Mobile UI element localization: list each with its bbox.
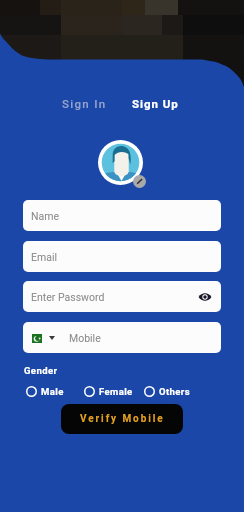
button[interactable]: Verify Mobile [61, 404, 183, 434]
button[interactable]: Email [23, 241, 221, 272]
button[interactable]: Others [144, 386, 190, 397]
button[interactable]: Edit profile photo [133, 175, 146, 188]
button[interactable]: Enter Password [23, 281, 221, 312]
button[interactable]: Male [26, 386, 64, 397]
staticText: Mobile [69, 332, 101, 344]
staticText: Sign In [62, 97, 107, 110]
button[interactable]: Female [84, 386, 133, 397]
button[interactable]: Show password [198, 290, 212, 304]
button[interactable]: Sign In [56, 92, 113, 115]
staticText: Male [41, 386, 64, 397]
staticText: Female [99, 386, 133, 397]
staticText: Gender [24, 365, 58, 376]
staticText: Verify Mobile [80, 413, 165, 425]
button[interactable]: Name [23, 200, 221, 231]
staticText: Name [31, 210, 59, 222]
staticText: Others [159, 386, 190, 397]
staticText: Email [31, 251, 57, 263]
staticText: Sign Up [132, 97, 179, 110]
staticText: Enter Password [31, 291, 105, 303]
button[interactable]: Mobile [32, 332, 101, 344]
button[interactable]: Mobile [23, 322, 221, 353]
button[interactable]: Sign Up [126, 92, 185, 115]
